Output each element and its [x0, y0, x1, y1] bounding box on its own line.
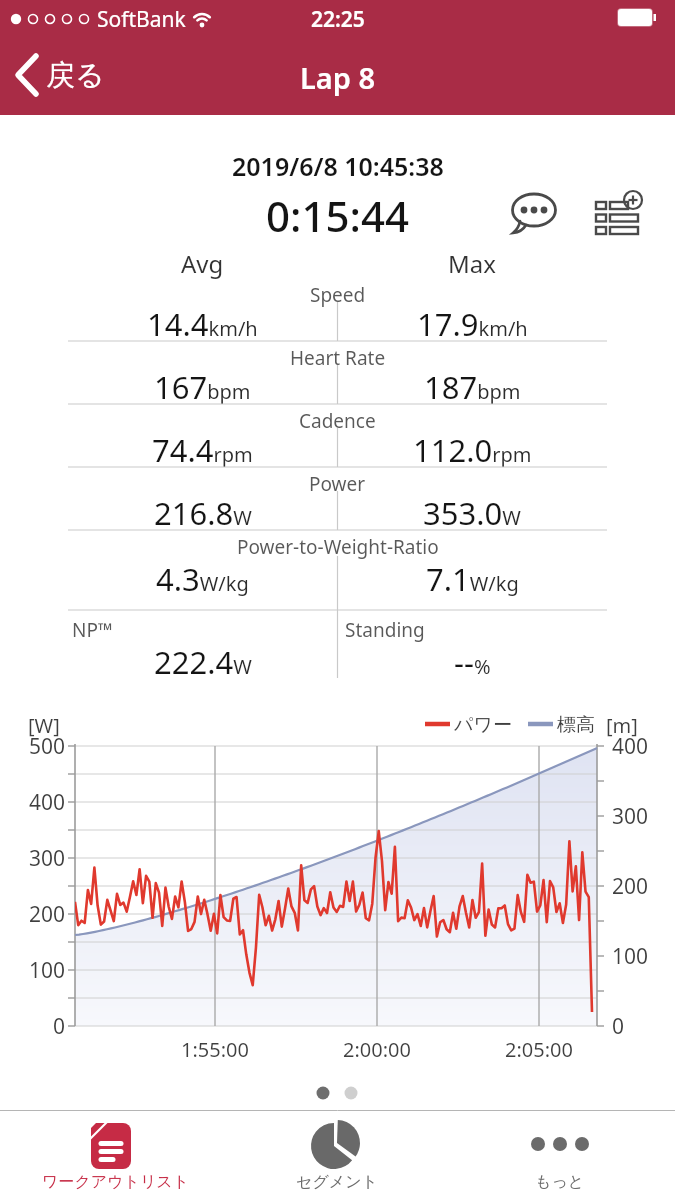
staticText: 14.4km/h [147, 303, 258, 345]
staticText: Speed [310, 282, 366, 308]
staticText: 2:00:00 [343, 1036, 411, 1063]
staticText: 112.0rpm [413, 429, 532, 471]
button[interactable] [508, 190, 560, 238]
staticText: 2:05:00 [505, 1036, 573, 1063]
staticText: Power [309, 471, 366, 497]
staticText: 22:25 [311, 5, 365, 34]
button[interactable]: セグメント [244, 1114, 430, 1200]
staticText: 167bpm [154, 366, 251, 408]
staticText: 200 [29, 900, 66, 929]
staticText: NP™ [72, 617, 113, 643]
staticText: ワークアウトリスト [42, 1172, 189, 1192]
staticText: 400 [612, 732, 649, 761]
staticText: 74.4rpm [152, 429, 253, 471]
staticText: 300 [29, 844, 66, 873]
staticText: Lap 8 [300, 58, 376, 97]
staticText: 353.0W [423, 492, 521, 534]
button[interactable]: 戻る [10, 45, 140, 105]
staticText: 0 [612, 1012, 625, 1041]
button[interactable]: もっと [467, 1114, 653, 1200]
button[interactable] [592, 188, 644, 240]
staticText: 17.9km/h [417, 303, 528, 345]
staticText: 400 [29, 788, 66, 817]
staticText: [m] [606, 712, 638, 739]
staticText: 0 [53, 1012, 66, 1041]
staticText: 216.8W [154, 492, 252, 534]
staticText: 戻る [46, 57, 105, 94]
staticText: Power-to-Weight-Ratio [237, 534, 439, 560]
staticText: 300 [612, 802, 649, 831]
staticText: パワー [454, 713, 512, 737]
staticText: 7.1W/kg [426, 558, 519, 600]
staticText: 222.4W [154, 641, 252, 683]
staticText: Max [448, 247, 496, 280]
staticText: 標高 [557, 713, 595, 737]
staticText: Avg [181, 247, 224, 280]
staticText: セグメント [296, 1172, 378, 1192]
button[interactable]: ワークアウトリスト [22, 1114, 208, 1200]
staticText: 2019/6/8 10:45:38 [232, 149, 444, 183]
staticText: 200 [612, 872, 649, 901]
staticText: Cadence [299, 408, 376, 434]
staticText: 500 [29, 732, 66, 761]
staticText: SoftBank [97, 5, 186, 34]
staticText: もっと [535, 1172, 585, 1192]
staticText: Standing [345, 617, 425, 643]
staticText: Heart Rate [290, 345, 386, 371]
staticText: 1:55:00 [181, 1036, 249, 1063]
staticText: [W] [28, 712, 60, 739]
staticText: 187bpm [424, 366, 521, 408]
staticText: --% [454, 641, 491, 683]
staticText: 100 [29, 956, 66, 985]
staticText: 0:15:44 [266, 187, 409, 244]
staticText: 4.3W/kg [156, 558, 249, 600]
staticText: 100 [612, 942, 649, 971]
